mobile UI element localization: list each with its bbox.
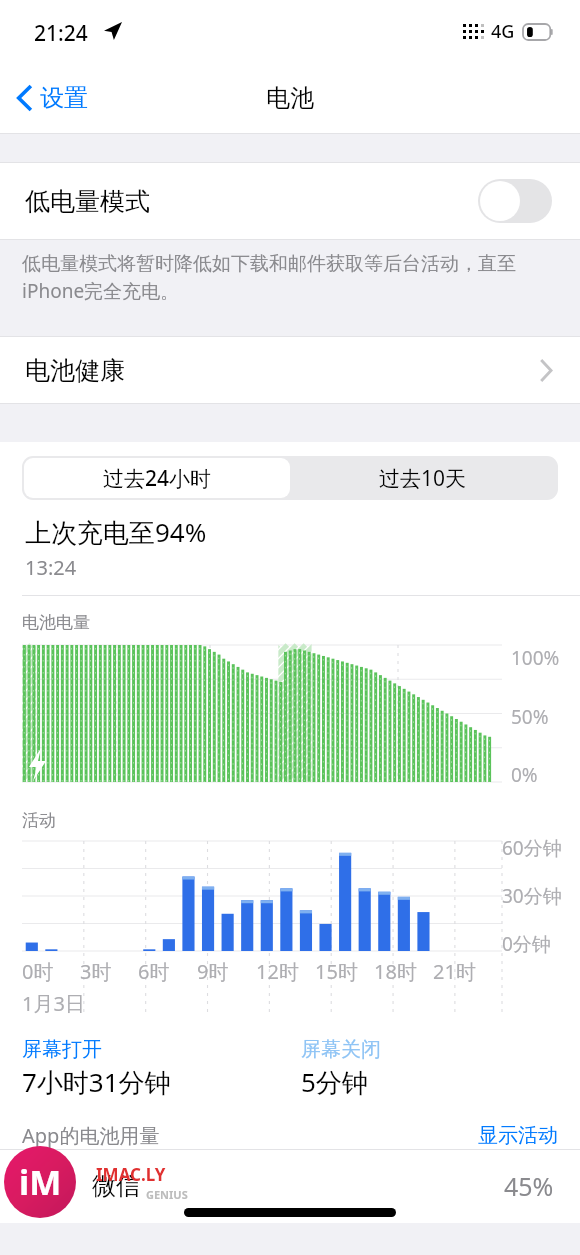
staticText: 0% [511,762,538,788]
button[interactable]: 设置 [12,75,94,121]
staticText: 30分钟 [502,883,562,909]
staticText: 4G [491,19,515,44]
button[interactable]: 显示活动 [478,1123,558,1148]
staticText: 电池电量 [22,612,90,633]
staticText: 7小时31分钟 [22,1064,171,1100]
staticText: 低电量模式 [25,186,150,217]
button[interactable]: 电池健康 [0,336,580,404]
staticText: 6时 [138,958,170,985]
staticText: App的电池用量 [22,1122,160,1149]
staticText: 21时 [433,958,476,985]
staticText: 设置 [40,83,88,113]
staticText: 9时 [197,958,229,985]
staticText: 60分钟 [502,835,562,861]
button[interactable]: 过去10天 [290,458,556,498]
staticText: 上次充电至94% [25,514,207,550]
staticText: 屏幕关闭 [301,1037,381,1062]
staticText: 45% [504,1169,554,1203]
staticText: 活动 [22,810,56,831]
staticText: 屏幕打开 [22,1037,102,1062]
staticText: 3时 [80,958,112,985]
staticText: 过去24小时 [103,464,212,493]
staticText: 电池健康 [25,355,125,386]
staticText: 过去10天 [379,464,467,493]
button[interactable]: 微信 [0,1149,580,1223]
staticText: 显示活动 [478,1123,558,1148]
staticText: 21:24 [34,19,88,48]
button[interactable]: 过去24小时 [24,458,290,498]
staticText: 13:24 [25,554,77,581]
staticText: 电池 [266,83,314,113]
staticText: 0时 [22,958,54,985]
button[interactable]: 低电量模式 [0,162,580,240]
staticText: 12时 [256,958,299,985]
staticText: 5分钟 [301,1064,368,1100]
button[interactable]: 低电量模式开关 [478,179,552,223]
staticText: 50% [511,704,549,730]
staticText: 15时 [315,958,358,985]
staticText: 0分钟 [502,931,551,957]
staticText: 微信 [92,1171,140,1201]
staticText: 100% [511,645,560,671]
staticText: 18时 [374,958,417,985]
staticText: 低电量模式将暂时降低如下载和邮件获取等后台活动，直至 iPhone完全充电。 [22,252,516,304]
staticText: iM [19,1159,62,1205]
staticText: 1月3日 [22,990,85,1017]
staticText: GENIUS [146,1187,188,1202]
staticText: IMAC.LY [96,1163,166,1186]
